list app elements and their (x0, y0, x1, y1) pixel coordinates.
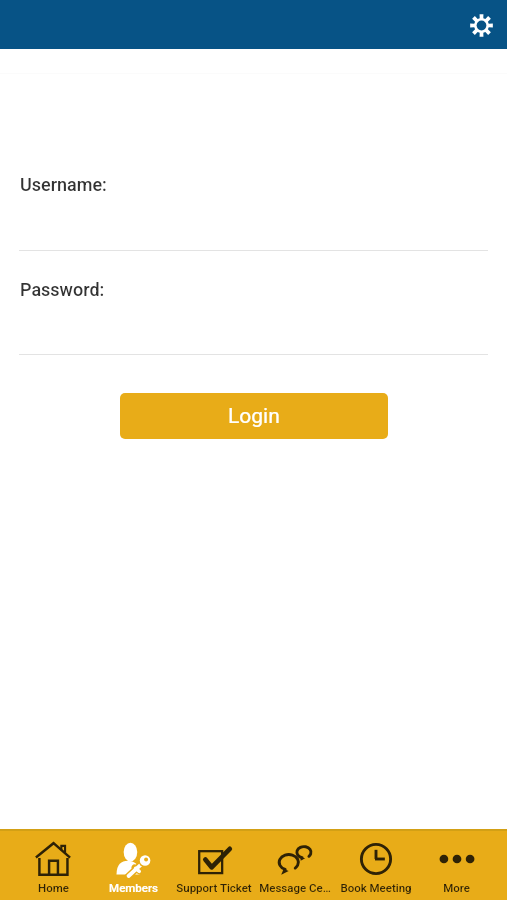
staticText: Book Meeting (340, 881, 412, 894)
button[interactable]: Login (120, 393, 388, 439)
staticText: More (443, 881, 470, 894)
button[interactable]: Home (13, 831, 93, 900)
button[interactable]: Members (93, 831, 173, 900)
button[interactable]: Book Meeting (335, 831, 416, 900)
staticText: Support Ticket (176, 881, 252, 894)
staticText: Login (228, 404, 280, 429)
staticText: Home (38, 881, 69, 894)
staticText: Message Ce… (259, 881, 331, 894)
staticText: Username: (20, 174, 107, 195)
button[interactable]: Message Ce… (254, 831, 335, 900)
staticText: Members (109, 881, 158, 894)
button[interactable]: Support Ticket (173, 831, 254, 900)
staticText: Password: (20, 279, 105, 300)
button[interactable]: Settings (459, 3, 503, 47)
button[interactable]: More (416, 831, 497, 900)
